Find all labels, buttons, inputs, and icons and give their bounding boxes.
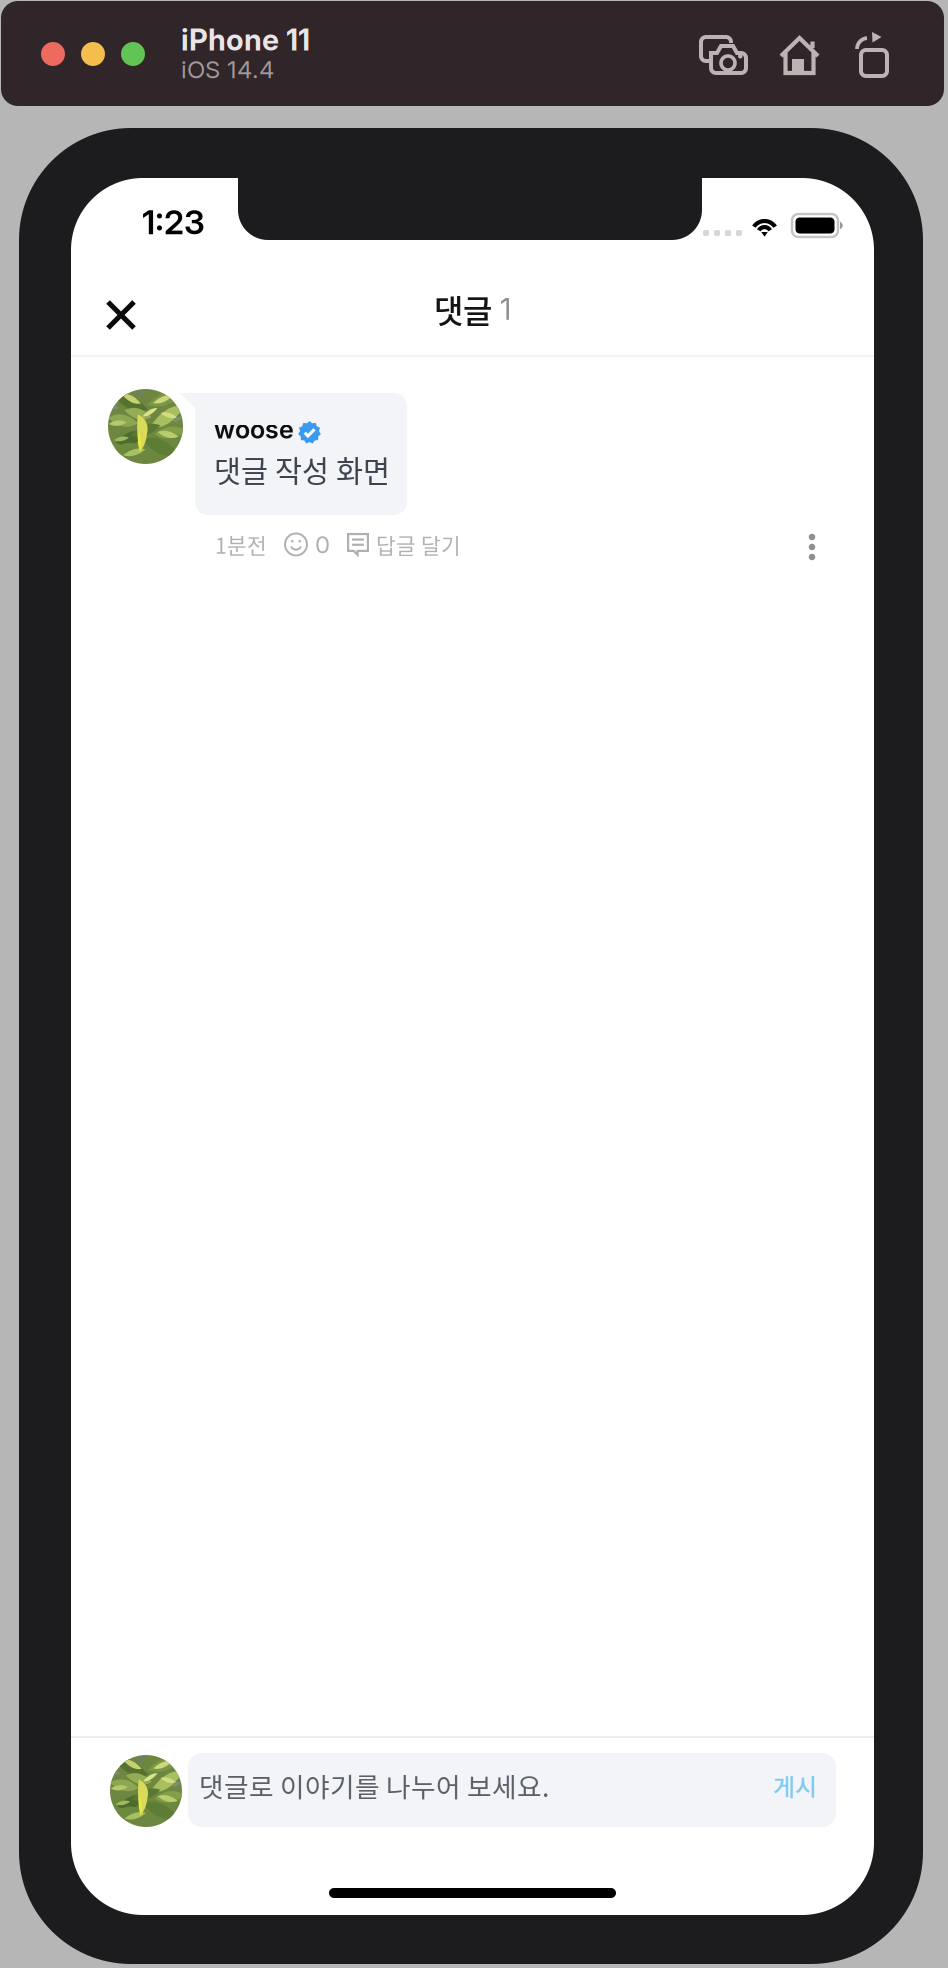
button[interactable]: Close [85,250,175,332]
button[interactable]: 게시 [726,1753,826,1827]
staticText: 1 [492,291,511,327]
staticText: 댓글로 이야기를 나누어 보세요. [199,1766,549,1805]
staticText: 답글 달기 [376,529,461,560]
button[interactable]: 0 [267,530,330,559]
staticText: 1:23 [142,202,205,242]
staticText: 댓글 [434,286,492,332]
staticText: 게시 [773,1768,817,1803]
staticText: iPhone 11 [181,22,310,57]
staticText: 1분전 [215,529,267,560]
staticText: 댓글 작성 화면 [214,448,390,490]
button[interactable]: Home [777,33,823,77]
button[interactable]: More options [785,520,839,574]
staticText: woose [214,414,294,445]
button[interactable]: Rotate [851,32,895,78]
button[interactable]: 답글 달기 [330,529,461,560]
button[interactable]: Screenshot [699,34,751,80]
staticText: iOS 14.4 [181,55,274,84]
staticText: 0 [315,530,330,559]
